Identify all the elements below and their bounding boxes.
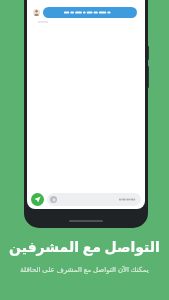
button[interactable]: Attach file xyxy=(47,193,141,206)
button[interactable]: Attach file xyxy=(50,196,57,203)
staticText: التواصل مع المشرفين xyxy=(9,237,160,256)
staticText: يمكنك الآن التواصل مع المشرف على الحافلة xyxy=(20,265,149,275)
button[interactable]: Send message xyxy=(31,193,44,206)
button[interactable] xyxy=(43,7,137,18)
